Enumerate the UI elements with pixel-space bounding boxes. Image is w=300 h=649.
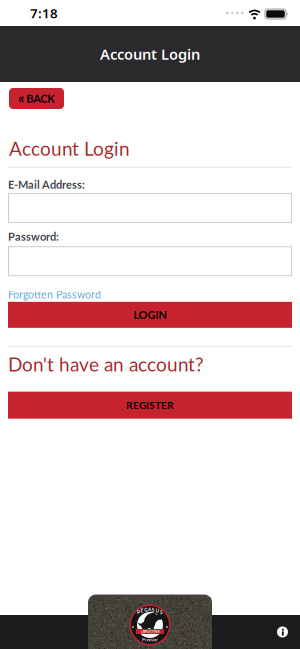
button[interactable]: «	[9, 88, 64, 109]
button[interactable]: Info	[277, 626, 288, 637]
button[interactable]: LOGIN	[8, 302, 292, 328]
staticText: S	[152, 607, 155, 613]
staticText: U	[155, 608, 159, 614]
staticText: G	[144, 607, 147, 613]
staticText: A	[148, 607, 151, 613]
button[interactable]: REGISTER	[8, 392, 292, 419]
staticText: LANDOVER	[140, 629, 159, 634]
staticText: BACK	[26, 92, 55, 105]
staticText: REGISTER	[126, 399, 174, 411]
staticText: 7:18	[30, 4, 58, 22]
staticText: E	[141, 608, 144, 614]
button[interactable]: Password	[8, 246, 292, 276]
staticText: S	[160, 609, 163, 615]
staticText: «	[18, 89, 25, 106]
staticText: Premier	[142, 637, 158, 642]
staticText: Account Login	[9, 137, 130, 160]
button[interactable]: E-Mail Address	[8, 193, 292, 223]
staticText: Account Login	[100, 44, 200, 64]
staticText: Don't have an account?	[8, 353, 204, 376]
staticText: LOGIN	[133, 308, 166, 321]
staticText: P	[137, 609, 140, 615]
staticText: Forgotten Password	[8, 288, 101, 301]
staticText: E-Mail Address:	[8, 178, 85, 191]
staticText: Password:	[8, 230, 59, 243]
button[interactable]: Forgotten Password	[8, 288, 101, 301]
